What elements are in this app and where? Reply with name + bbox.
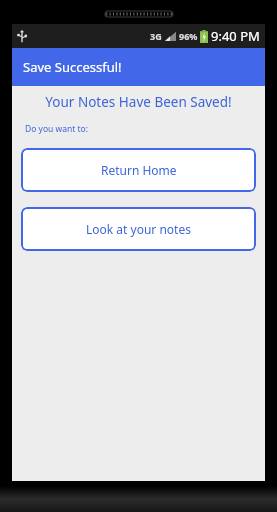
other: USB connected — [17, 30, 27, 43]
staticText: 96% — [179, 30, 198, 42]
other: Battery charging — [200, 30, 208, 43]
button[interactable]: Return Home — [21, 148, 256, 192]
staticText: Your Notes Have Been Saved! — [12, 93, 265, 111]
staticText: Do you want to: — [25, 123, 88, 135]
staticText: Return Home — [101, 162, 177, 178]
staticText: 9:40 PM — [211, 27, 260, 45]
staticText: Look at your notes — [86, 221, 191, 237]
button[interactable]: Look at your notes — [21, 207, 256, 251]
staticText: 3G — [150, 30, 162, 42]
button[interactable]: Save Successful! — [12, 48, 265, 86]
staticText: Save Successful! — [23, 58, 122, 76]
other: Signal strength — [165, 31, 176, 41]
